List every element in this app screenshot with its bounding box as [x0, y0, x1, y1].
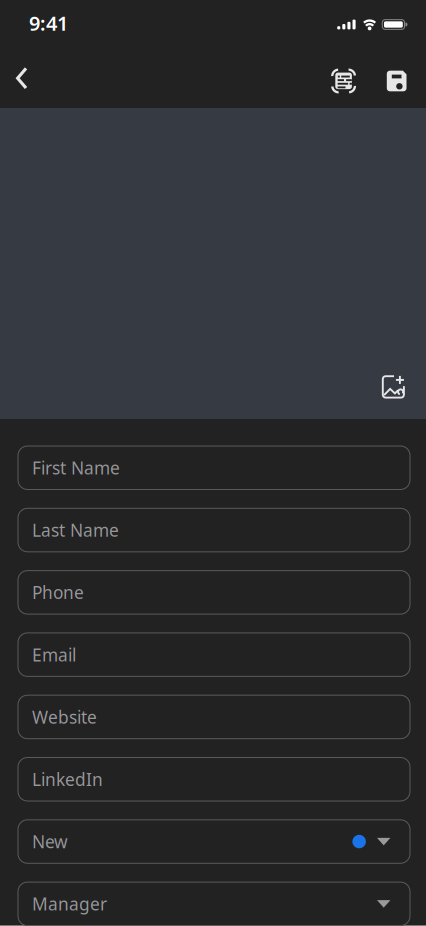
button[interactable]: Website: [18, 695, 410, 739]
staticText: 9:41: [29, 10, 68, 36]
button[interactable]: New: [18, 820, 410, 863]
button[interactable]: Save: [372, 44, 426, 108]
button[interactable]: Scan business card: [318, 44, 372, 108]
button[interactable]: Back: [0, 44, 42, 108]
button[interactable]: Last Name: [18, 508, 410, 552]
staticText: Email: [32, 643, 76, 666]
staticText: LinkedIn: [32, 768, 103, 791]
button[interactable]: LinkedIn: [18, 757, 410, 801]
button[interactable]: Email: [18, 633, 410, 676]
staticText: Last Name: [32, 518, 119, 541]
button[interactable]: Phone: [18, 571, 410, 614]
button[interactable]: First Name: [18, 446, 410, 489]
staticText: New: [32, 830, 68, 853]
staticText: First Name: [32, 456, 120, 479]
staticText: Website: [32, 705, 97, 728]
staticText: Phone: [32, 581, 84, 604]
staticText: Manager: [32, 892, 107, 915]
button[interactable]: Manager: [18, 882, 410, 926]
button[interactable]: Add photo: [0, 108, 426, 419]
